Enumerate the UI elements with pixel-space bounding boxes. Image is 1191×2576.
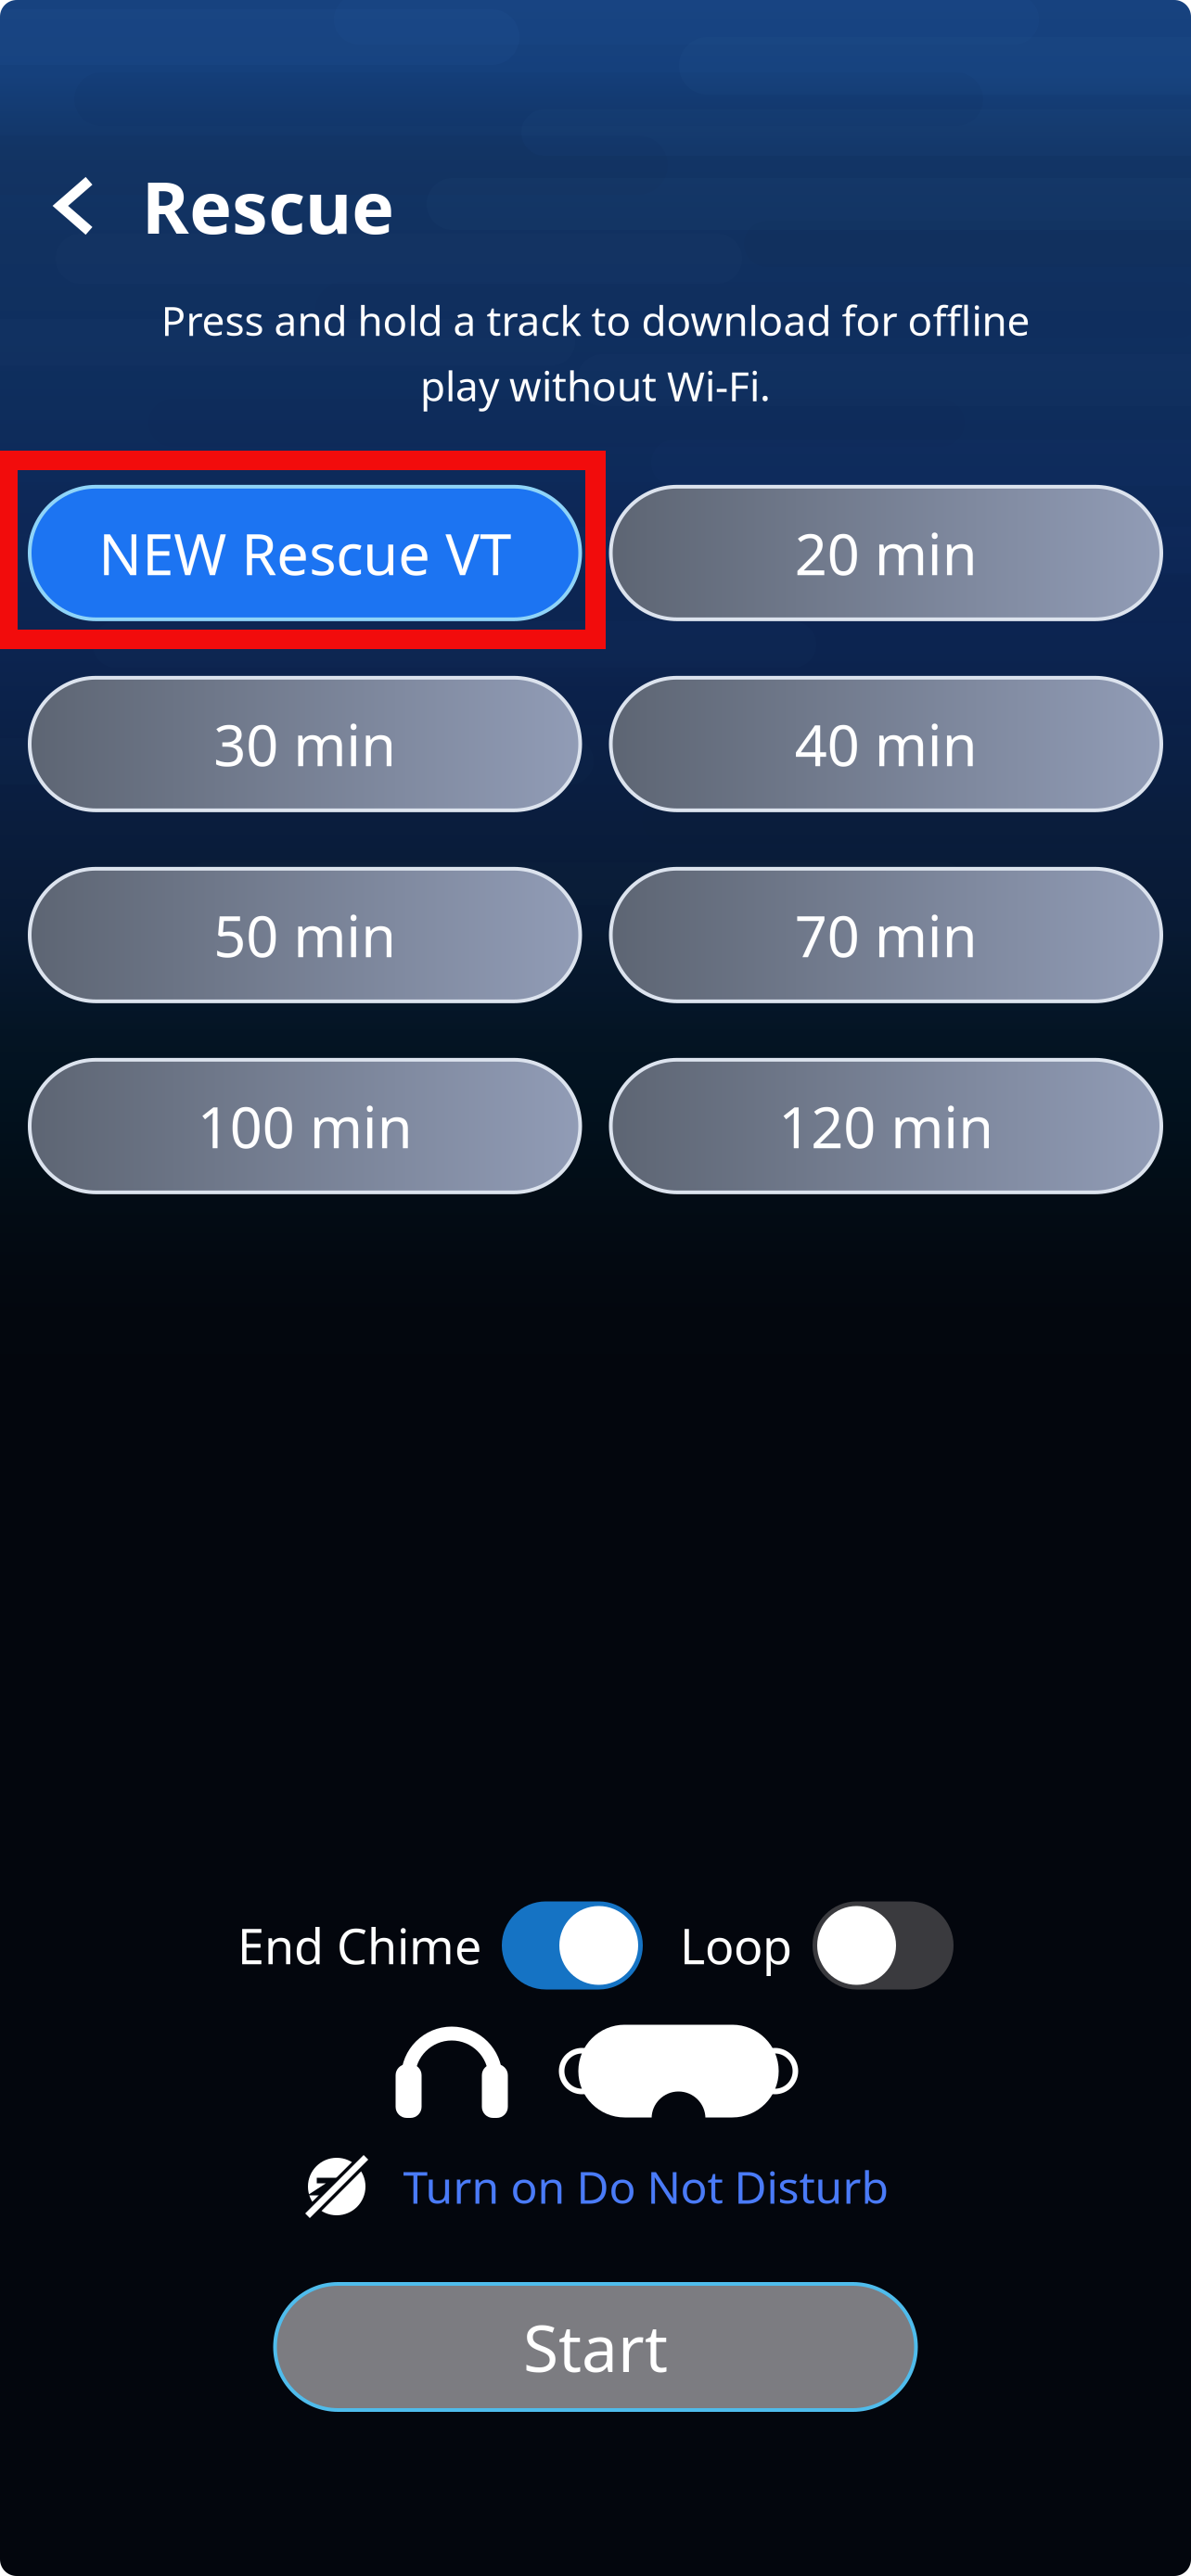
- button[interactable]: Start: [275, 2284, 916, 2410]
- staticText: NEW Rescue VT: [99, 515, 511, 591]
- button[interactable]: 100 min: [30, 1060, 580, 1192]
- staticText: 120 min: [778, 1088, 994, 1164]
- staticText: play without Wi-Fi.: [420, 358, 771, 412]
- staticText: End Chime: [237, 1913, 481, 1978]
- staticText: Start: [523, 2304, 668, 2390]
- button[interactable]: 20 min: [611, 487, 1161, 619]
- button[interactable]: 70 min: [611, 869, 1161, 1001]
- button[interactable]: Headphones: [396, 2024, 508, 2118]
- button[interactable]: 50 min: [30, 869, 580, 1001]
- staticText: 70 min: [795, 897, 977, 973]
- button[interactable]: Loop: [680, 1901, 954, 1989]
- button[interactable]: 30 min: [30, 678, 580, 810]
- staticText: 30 min: [214, 706, 396, 782]
- staticText: 40 min: [795, 706, 977, 782]
- staticText: Rescue: [142, 158, 394, 254]
- button[interactable]: 40 min: [611, 678, 1161, 810]
- button[interactable]: Back: [54, 163, 96, 249]
- staticText: 50 min: [214, 897, 396, 973]
- button[interactable]: Sleep mask: [562, 2024, 795, 2118]
- button[interactable]: End Chime: [237, 1901, 643, 1989]
- button[interactable]: Turn on Do Not Disturb: [302, 2151, 889, 2222]
- staticText: 100 min: [197, 1088, 413, 1164]
- staticText: Press and hold a track to download for o…: [161, 293, 1030, 347]
- staticText: Loop: [680, 1913, 792, 1978]
- staticText: 20 min: [795, 515, 977, 591]
- staticText: Turn on Do Not Disturb: [403, 2157, 889, 2216]
- button[interactable]: 120 min: [611, 1060, 1161, 1192]
- button[interactable]: NEW Rescue VT: [30, 487, 580, 619]
